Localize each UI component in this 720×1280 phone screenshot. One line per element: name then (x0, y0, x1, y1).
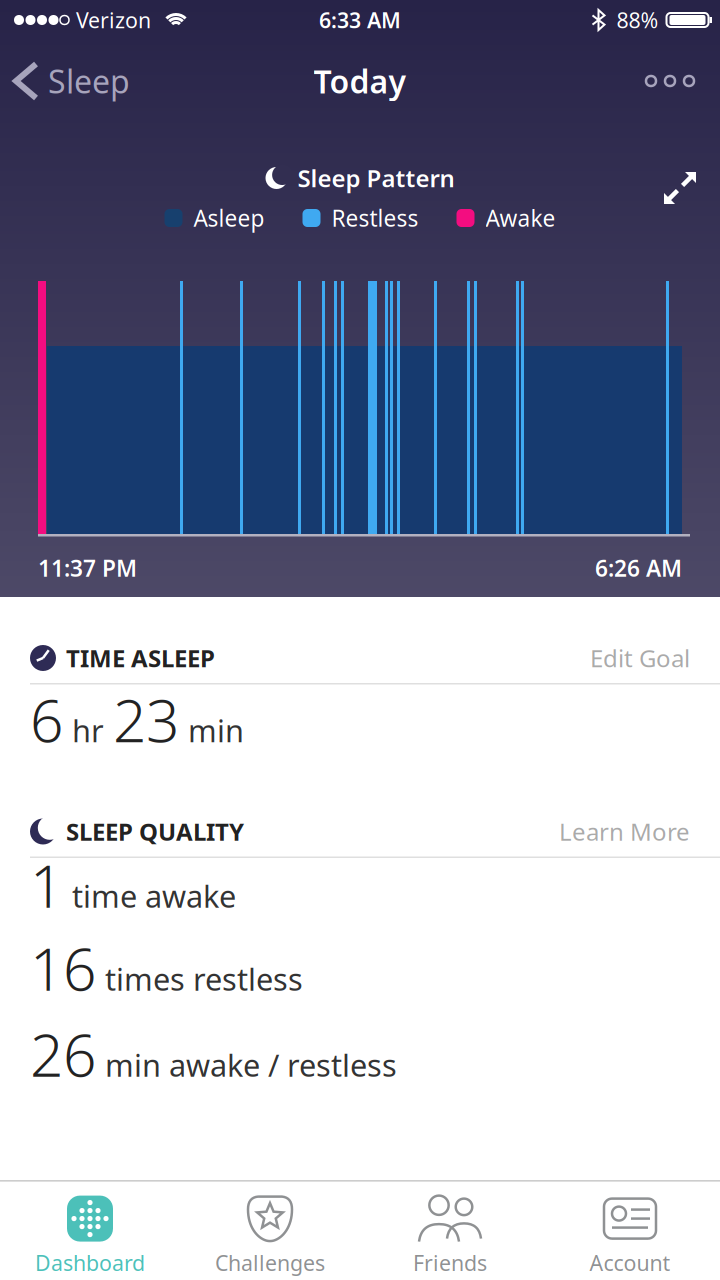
staticText: 88% (616, 6, 658, 34)
staticText: SLEEP QUALITY (66, 816, 244, 847)
staticText: TIME ASLEEP (66, 642, 215, 674)
staticText: Edit Goal (590, 642, 690, 674)
staticText: 23 (113, 680, 179, 758)
staticText: time awake (72, 875, 236, 916)
staticText: 6:33 AM (319, 6, 401, 34)
button[interactable]: Challenges (180, 1196, 360, 1277)
staticText: times restless (105, 958, 303, 999)
button[interactable]: Sleep (0, 60, 130, 102)
staticText: Friends (413, 1249, 487, 1277)
staticText: 26 (30, 1015, 96, 1093)
staticText: hr (72, 710, 104, 751)
staticText: 11:37 PM (38, 553, 137, 583)
button[interactable] (664, 162, 696, 194)
staticText: 6 (30, 680, 63, 758)
staticText: Asleep (193, 203, 264, 233)
staticText: Challenges (215, 1249, 325, 1277)
staticText: Verizon (76, 6, 151, 34)
staticText: Awake (485, 203, 555, 233)
button[interactable]: Learn More (559, 816, 690, 847)
staticText: Sleep (48, 60, 130, 102)
button[interactable]: Account (540, 1196, 720, 1277)
button[interactable]: Edit Goal (590, 642, 690, 674)
staticText: Sleep Pattern (297, 162, 454, 194)
staticText: min awake / restless (105, 1044, 397, 1085)
staticText: Dashboard (35, 1249, 145, 1277)
button[interactable]: Friends (360, 1196, 540, 1277)
staticText: 1 (30, 846, 63, 924)
staticText: 6:26 AM (595, 553, 682, 583)
staticText: min (188, 710, 244, 751)
button[interactable] (646, 76, 720, 86)
staticText: Today (313, 60, 406, 102)
button[interactable]: Dashboard (0, 1196, 180, 1277)
staticText: Restless (331, 203, 418, 233)
staticText: 16 (30, 929, 96, 1007)
staticText: Learn More (559, 816, 690, 847)
staticText: Account (589, 1249, 670, 1277)
